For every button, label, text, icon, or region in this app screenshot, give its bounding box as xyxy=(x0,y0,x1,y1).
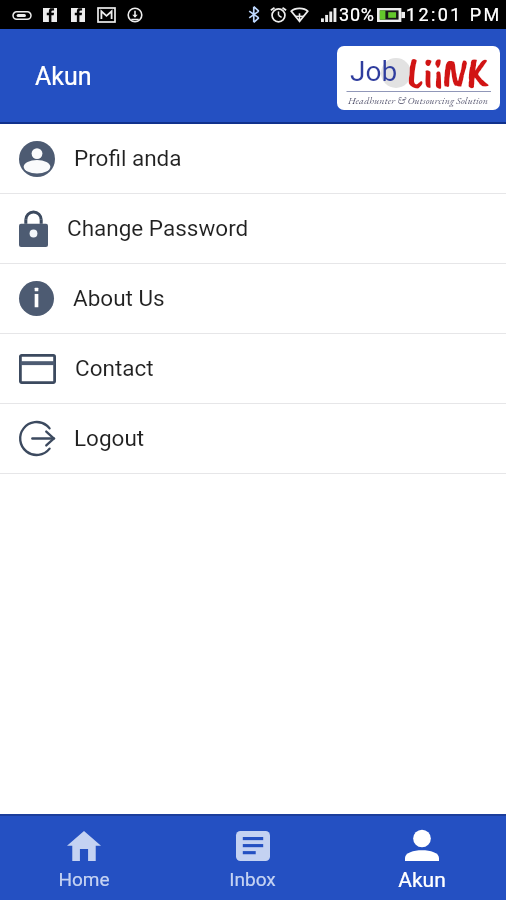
button[interactable]: Home xyxy=(0,814,168,900)
button[interactable]: Inbox xyxy=(168,814,337,900)
staticText: 30% xyxy=(339,4,375,25)
button[interactable]: About Us xyxy=(0,264,506,333)
button[interactable]: Contact xyxy=(0,334,506,403)
staticText: Contact xyxy=(75,355,154,381)
staticText: Job xyxy=(350,55,398,88)
staticText: Akun xyxy=(35,62,92,91)
staticText: Logout xyxy=(74,425,145,451)
other: JobLiiNK logo xyxy=(337,46,500,110)
staticText: Headhunter & Outsourcing Solution xyxy=(348,94,489,107)
button[interactable]: Akun xyxy=(337,814,506,900)
staticText: Home xyxy=(58,868,110,890)
staticText: About Us xyxy=(73,285,165,311)
staticText: 12:01 PM xyxy=(406,4,502,25)
staticText: Inbox xyxy=(229,868,276,890)
button[interactable]: Profil anda xyxy=(0,124,506,193)
staticText: LiiNK xyxy=(407,46,489,101)
button[interactable]: Logout xyxy=(0,404,506,473)
staticText: Change Password xyxy=(67,215,249,241)
staticText: Akun xyxy=(398,868,446,893)
button[interactable]: Change Password xyxy=(0,194,506,263)
staticText: Profil anda xyxy=(74,145,182,171)
